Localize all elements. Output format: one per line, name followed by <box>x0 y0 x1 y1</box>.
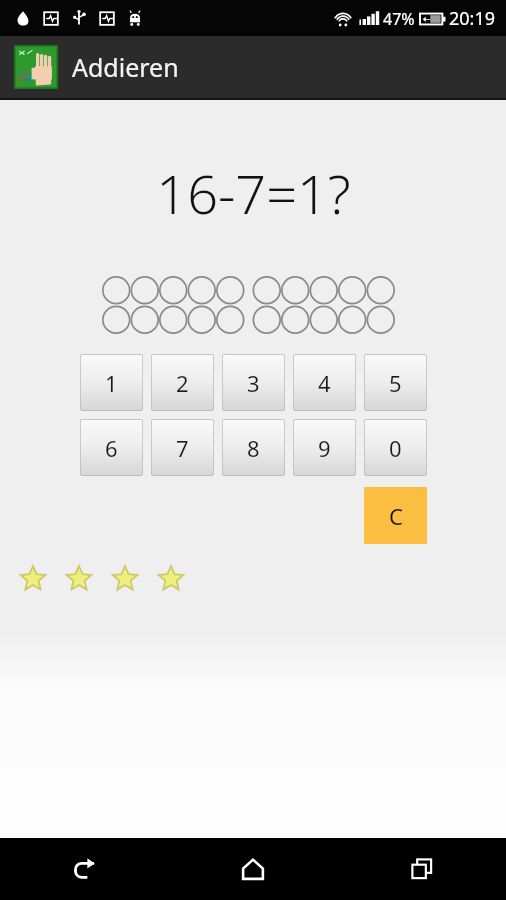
button[interactable]: 5 <box>364 354 427 411</box>
staticText: 4 <box>318 368 331 398</box>
button[interactable]: Home <box>168 838 337 900</box>
staticText: 16-7=1? <box>156 156 351 230</box>
button[interactable]: 6 <box>80 419 143 476</box>
button[interactable]: 1 <box>80 354 143 411</box>
button[interactable]: 9 <box>293 419 356 476</box>
staticText: 3 <box>247 368 260 398</box>
staticText: 9 <box>318 433 331 463</box>
staticText: 8 <box>247 433 260 463</box>
button[interactable]: 3 <box>222 354 285 411</box>
staticText: Addieren <box>72 50 179 84</box>
staticText: C <box>389 501 403 531</box>
staticText: 20:19 <box>449 6 496 31</box>
staticText: 6 <box>105 433 118 463</box>
staticText: 7 <box>176 433 189 463</box>
button[interactable]: 7 <box>151 419 214 476</box>
staticText: 47% <box>383 8 415 30</box>
button[interactable]: Recent apps <box>337 838 506 900</box>
staticText: 5 <box>389 368 402 398</box>
staticText: 1 <box>105 368 118 398</box>
button[interactable]: C <box>364 487 427 544</box>
staticText: 0 <box>389 433 402 463</box>
staticText: 2 <box>176 368 189 398</box>
button[interactable]: 2 <box>151 354 214 411</box>
button[interactable]: Back <box>0 838 168 900</box>
button[interactable]: 0 <box>364 419 427 476</box>
button[interactable]: 8 <box>222 419 285 476</box>
button[interactable]: 4 <box>293 354 356 411</box>
